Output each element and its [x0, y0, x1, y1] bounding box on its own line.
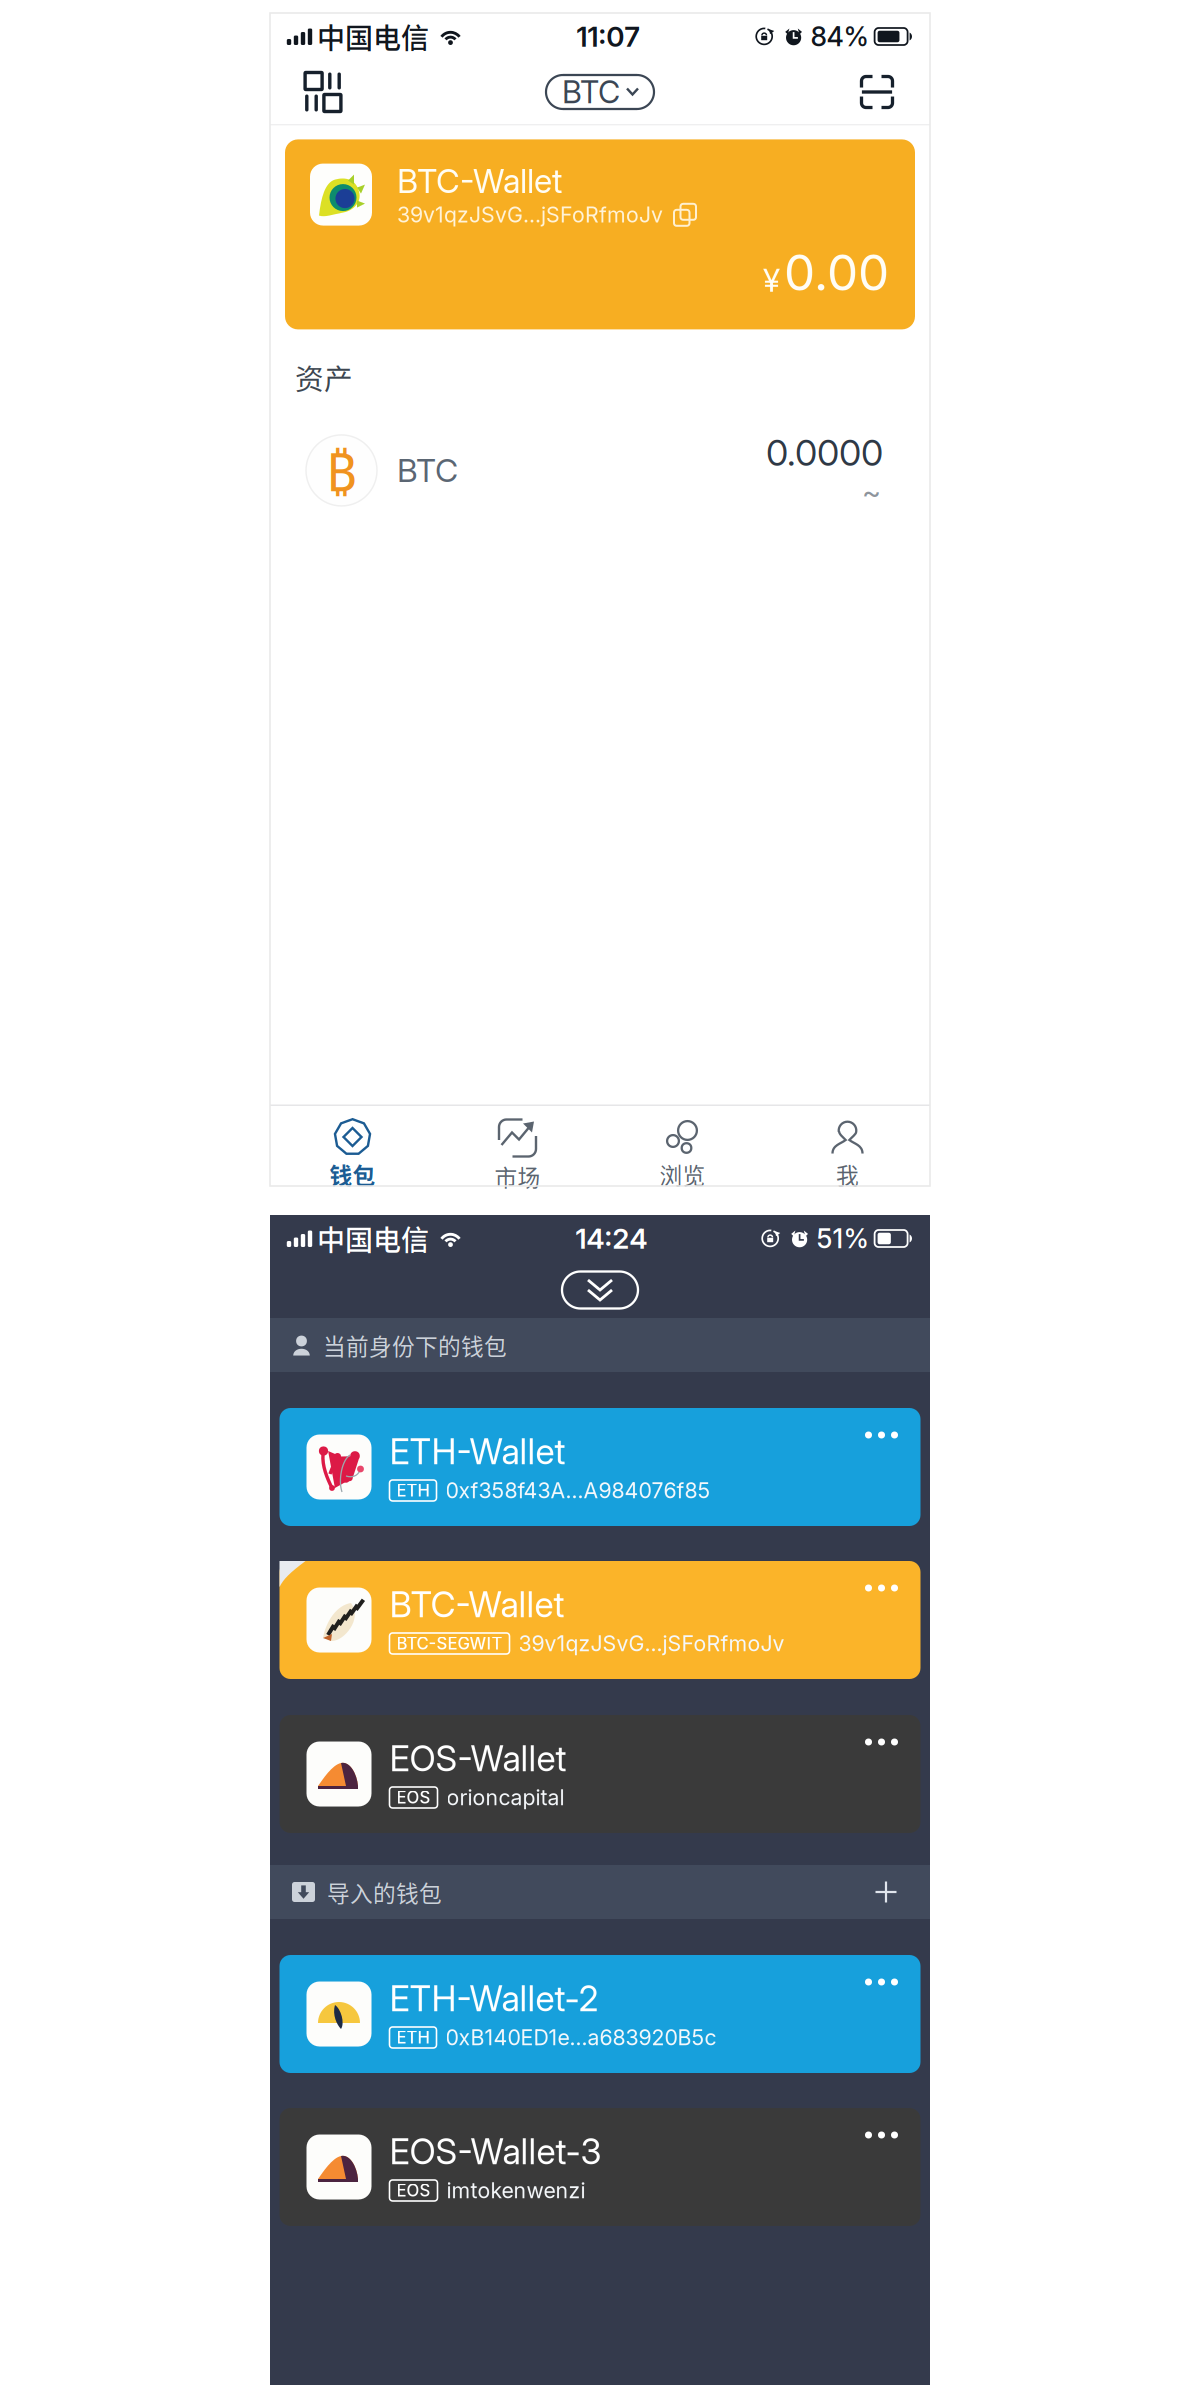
staticText: BTC [562, 73, 620, 110]
staticText: 资产 [295, 356, 353, 398]
button[interactable]: 我 [765, 1106, 930, 1186]
staticText: 39v1qzJSvG...jSFoRfmoJv [397, 202, 663, 228]
staticText: 14:24 [575, 1222, 647, 1255]
staticText: imtokenwenzi [446, 2178, 585, 2203]
button[interactable]: Scan QR code [845, 60, 909, 124]
staticText: BTC [397, 451, 458, 490]
staticText: ETH [396, 2027, 429, 2048]
staticText: 我 [836, 1158, 859, 1191]
button[interactable]: 浏览 [600, 1106, 765, 1186]
staticText: BTC-Wallet [389, 1584, 564, 1625]
staticText: EOS [396, 1787, 430, 1808]
staticText: 0.00 [784, 243, 889, 302]
staticText: 中国电信 [317, 16, 429, 57]
staticText: EOS-Wallet [389, 1738, 566, 1779]
staticText: ETH-Wallet-2 [389, 1978, 598, 2019]
staticText: EOS [396, 2180, 430, 2201]
staticText: 导入的钱包 [327, 1876, 442, 1908]
staticText: 中国电信 [317, 1218, 429, 1259]
staticText: EOS-Wallet-3 [389, 2131, 601, 2172]
button[interactable]: Collapse identity [562, 1271, 638, 1308]
button[interactable]: BTC-Wallet [279, 1561, 920, 1679]
staticText: 51% [817, 1222, 869, 1255]
staticText: 11:07 [576, 20, 640, 53]
staticText: 39v1qzJSvG...jSFoRfmoJv [518, 1631, 784, 1656]
button[interactable]: BTC [546, 75, 654, 109]
staticText: 0xf358f43A...A984076f85 [445, 1478, 710, 1503]
button[interactable]: 市场 [435, 1106, 600, 1186]
staticText: 当前身份下的钱包 [323, 1329, 507, 1361]
staticText: ₿ [326, 434, 357, 507]
staticText: ~ [862, 474, 881, 510]
staticText: orioncapital [446, 1785, 564, 1810]
button[interactable]: 钱包 [270, 1106, 435, 1186]
button[interactable]: ETH-Wallet [279, 1408, 920, 1526]
staticText: 84% [811, 20, 869, 53]
button[interactable]: Wallet manager [291, 60, 355, 124]
staticText: BTC-SEGWIT [396, 1633, 502, 1654]
staticText: 市场 [494, 1160, 540, 1193]
staticText: 浏览 [659, 1158, 705, 1191]
button[interactable]: EOS-Wallet-3 [279, 2108, 920, 2226]
staticText: ETH [396, 1480, 429, 1501]
staticText: ¥ [763, 261, 780, 299]
staticText: 0.0000 [766, 431, 883, 474]
staticText: ETH-Wallet [389, 1431, 565, 1472]
button[interactable]: ETH-Wallet-2 [279, 1955, 920, 2073]
button[interactable]: Add wallet [864, 1870, 908, 1914]
button[interactable]: EOS-Wallet [279, 1715, 920, 1833]
staticText: 0xB140ED1e...a683920B5c [445, 2025, 716, 2050]
staticText: BTC-Wallet [397, 161, 562, 201]
staticText: 钱包 [329, 1158, 375, 1191]
